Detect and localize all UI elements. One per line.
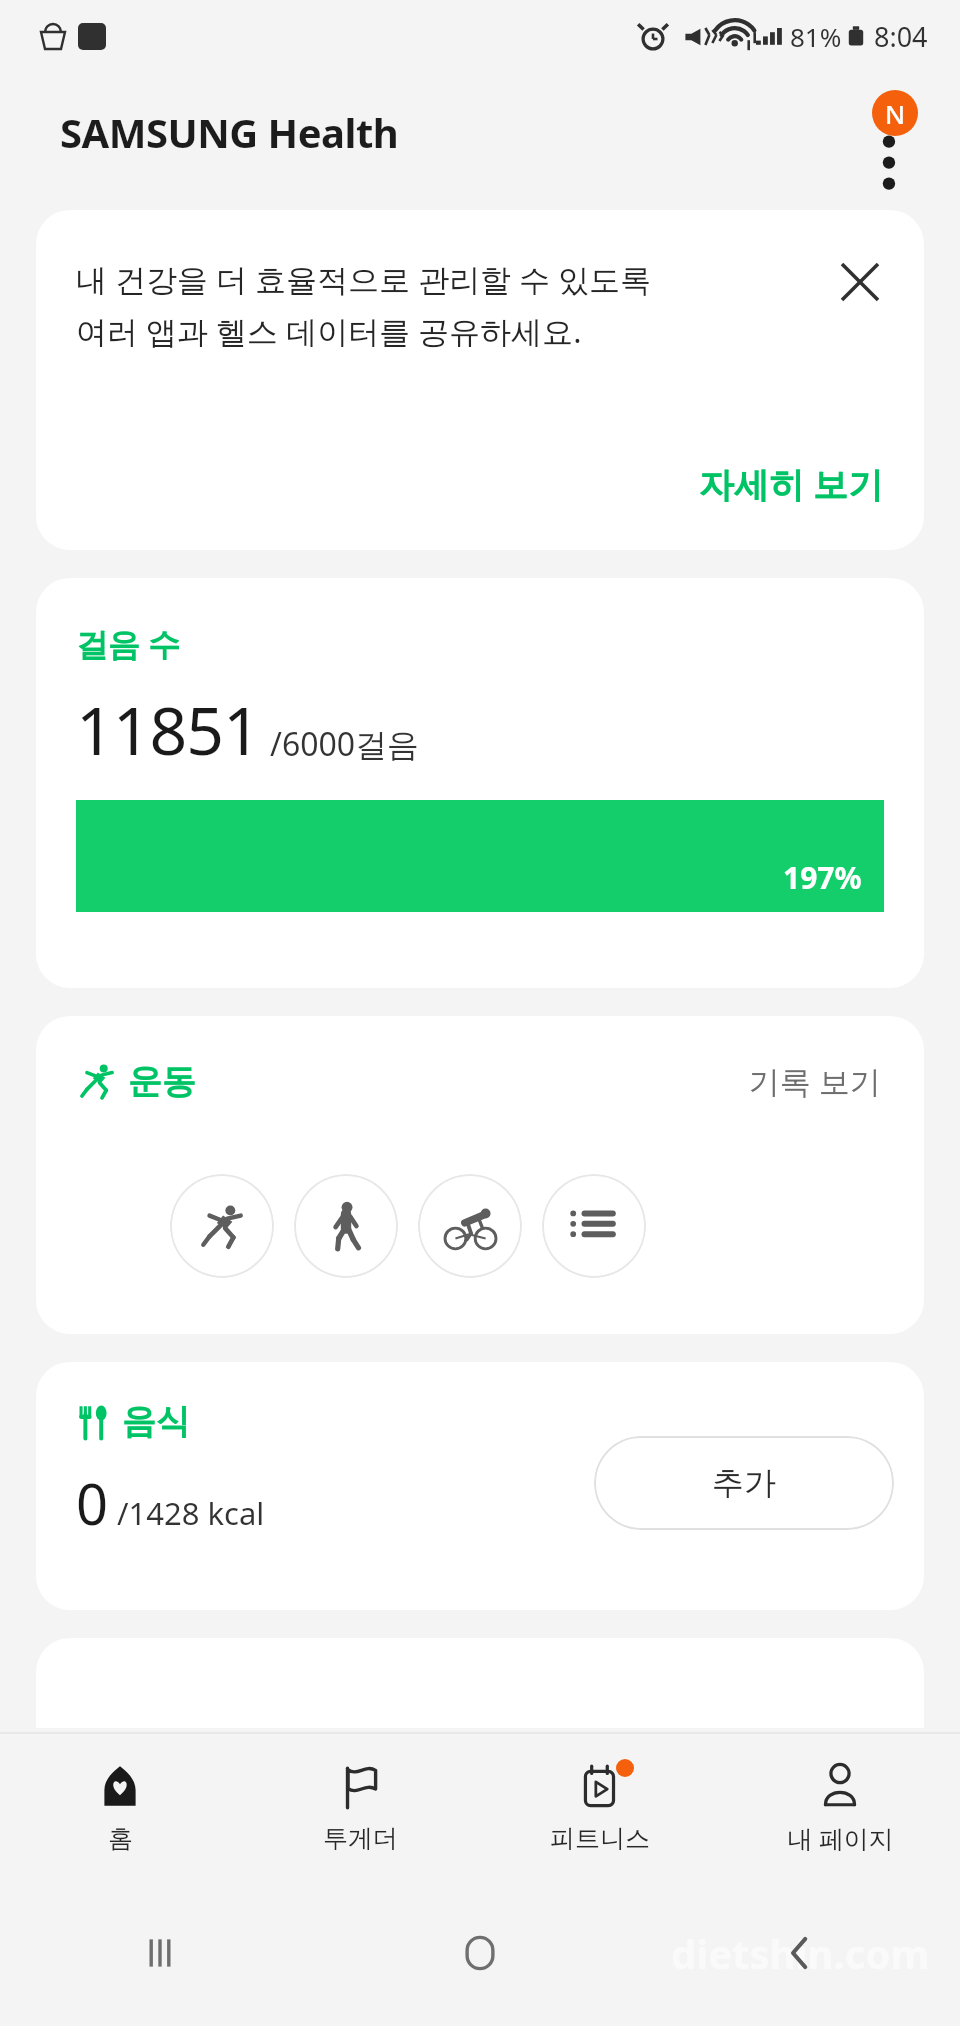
- staticText: /6000걸음: [270, 722, 420, 766]
- button[interactable]: Home: [320, 1880, 640, 2026]
- button[interactable]: 내 페이지: [720, 1734, 960, 1880]
- staticText: 81%: [790, 19, 842, 54]
- staticText: 0: [76, 1465, 109, 1541]
- button[interactable]: Cycle: [418, 1174, 522, 1278]
- staticText: 내 건강을 더 효율적으로 관리할 수 있도록: [76, 258, 652, 300]
- staticText: 여러 앱과 헬스 데이터를 공유하세요.: [76, 310, 582, 352]
- button[interactable]: 자세히 보기: [693, 456, 890, 512]
- staticText: 걸음 수: [76, 622, 181, 666]
- staticText: 피트니스: [550, 1823, 650, 1854]
- staticText: 기록 보기: [749, 1060, 882, 1102]
- button[interactable]: 내 건강을 더 효율적으로 관리할 수 있도록: [36, 210, 924, 550]
- staticText: 8:04: [874, 18, 928, 55]
- button[interactable]: Notifications: [872, 90, 918, 136]
- staticText: 홈: [108, 1823, 133, 1854]
- button[interactable]: 추가: [594, 1436, 894, 1530]
- button[interactable]: Recents: [0, 1880, 320, 2026]
- button[interactable]: 음식: [36, 1362, 924, 1610]
- staticText: /1428 kcal: [117, 1492, 265, 1534]
- button[interactable]: 피트니스: [480, 1734, 720, 1880]
- staticText: N: [885, 96, 906, 131]
- staticText: 197%: [783, 857, 862, 898]
- button[interactable]: More options: [864, 102, 912, 192]
- staticText: 운동: [128, 1060, 196, 1103]
- button[interactable]: 투게더: [240, 1734, 480, 1880]
- button[interactable]: 기록 보기: [745, 1054, 886, 1108]
- staticText: 11851: [76, 684, 260, 774]
- button[interactable]: Run: [170, 1174, 274, 1278]
- button[interactable]: More exercises: [542, 1174, 646, 1278]
- staticText: 음식: [122, 1400, 190, 1443]
- staticText: SAMSUNG Health: [60, 105, 399, 159]
- button[interactable]: Back: [640, 1880, 960, 2026]
- button[interactable]: 홈: [0, 1734, 240, 1880]
- button[interactable]: 운동: [36, 1016, 924, 1334]
- staticText: 내 페이지: [787, 1821, 894, 1855]
- staticText: 추가: [712, 1463, 776, 1503]
- staticText: 자세히 보기: [699, 460, 884, 508]
- staticText: dietshin.com: [671, 1926, 930, 1980]
- button[interactable]: Walk: [294, 1174, 398, 1278]
- staticText: 투게더: [323, 1823, 398, 1854]
- button[interactable]: Close: [824, 246, 896, 318]
- button[interactable]: 걸음 수: [36, 578, 924, 988]
